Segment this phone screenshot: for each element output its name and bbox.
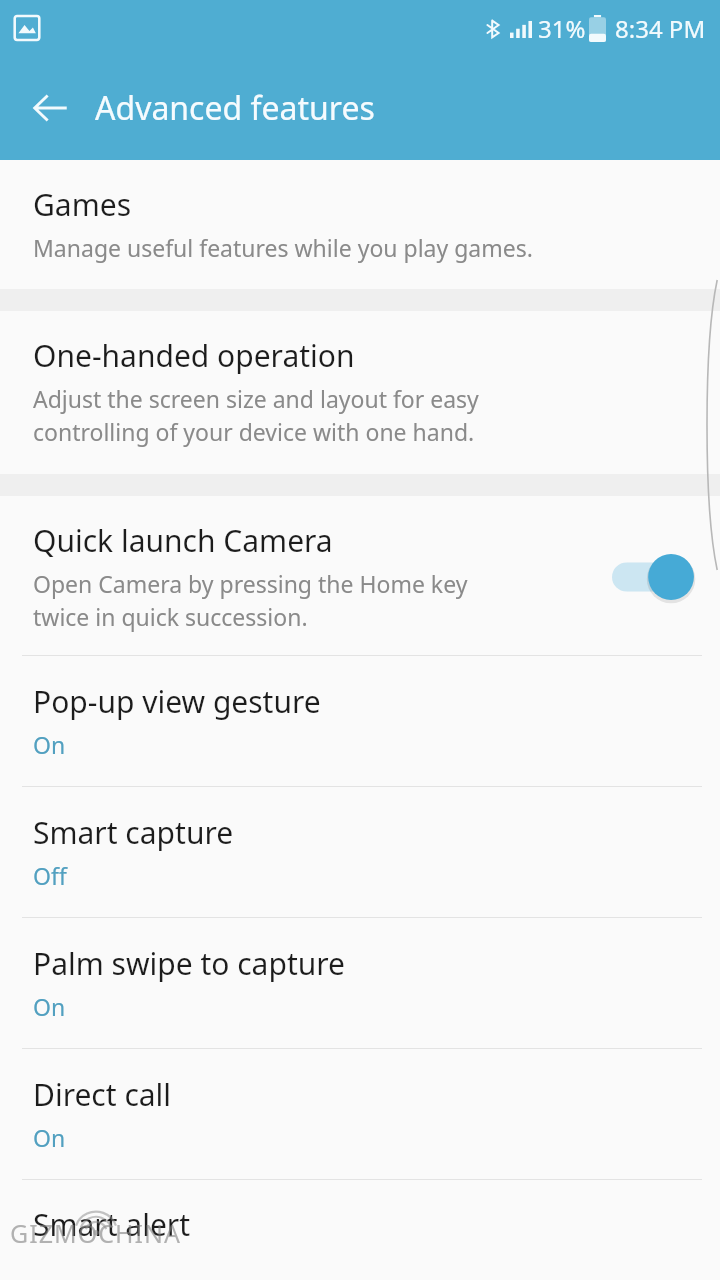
button[interactable]: Quick launch Camera [0, 496, 720, 655]
button[interactable]: Games [0, 160, 720, 289]
staticText: One-handed operation [33, 335, 355, 376]
staticText: Advanced features [95, 86, 375, 130]
staticText: Direct call [33, 1074, 172, 1115]
staticText: Manage useful features while you play ga… [33, 232, 533, 263]
staticText: 8:34 PM [615, 12, 706, 45]
staticText: Pop-up view gesture [33, 681, 321, 722]
staticText: Off [33, 860, 67, 891]
button[interactable]: Pop-up view gesture [0, 656, 720, 786]
button[interactable]: Navigate up [18, 76, 82, 140]
button[interactable]: Quick launch Camera toggle [612, 551, 698, 603]
staticText: Open Camera by pressing the Home key twi… [33, 568, 468, 633]
button[interactable]: Palm swipe to capture [0, 918, 720, 1048]
staticText: GIZMOCHINA [10, 1216, 181, 1250]
staticText: 31% [538, 12, 586, 45]
staticText: Games [33, 184, 132, 225]
staticText: Palm swipe to capture [33, 943, 345, 984]
staticText: On [33, 991, 66, 1022]
staticText: Smart capture [33, 812, 234, 853]
staticText: Quick launch Camera [33, 520, 333, 561]
staticText: Adjust the screen size and layout for ea… [33, 383, 479, 448]
staticText: On [33, 729, 66, 760]
staticText: On [33, 1122, 66, 1153]
button[interactable]: One-handed operation [0, 311, 720, 474]
button[interactable]: Smart capture [0, 787, 720, 917]
button[interactable]: Direct call [0, 1049, 720, 1179]
staticText: Smart alert [33, 1204, 191, 1245]
